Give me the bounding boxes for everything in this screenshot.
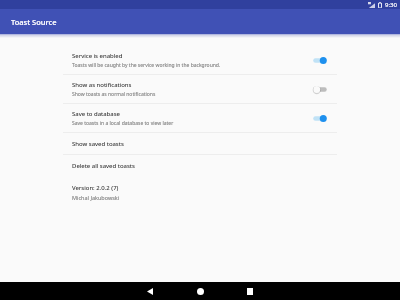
button[interactable]: Switch on <box>310 111 330 125</box>
staticText: Save toasts in a local database to view … <box>72 120 174 127</box>
button[interactable]: Show as notifications <box>63 75 337 103</box>
staticText: Service is enabled <box>72 52 123 60</box>
button[interactable]: Show saved toasts <box>63 133 337 154</box>
staticText: Show saved toasts <box>72 140 124 148</box>
staticText: Delete all saved toasts <box>72 162 135 170</box>
staticText: Version: 2.0.2 (7) <box>72 184 119 192</box>
button[interactable]: Version: 2.0.2 (7) <box>63 176 337 207</box>
staticText: Service is enabled <box>72 52 123 60</box>
staticText: Save toasts in a local database to view … <box>72 120 174 127</box>
staticText: Toast Source <box>11 17 57 27</box>
button[interactable]: Switch off <box>310 82 330 96</box>
staticText: Save to database <box>72 110 120 118</box>
staticText: Toasts will be caught by the service wor… <box>72 62 221 69</box>
staticText: Michal Jakubowski <box>72 194 120 201</box>
staticText: 9:30 <box>385 1 397 9</box>
button[interactable]: Switch on <box>310 53 330 67</box>
button[interactable]: Home <box>187 282 213 300</box>
staticText: Version: 2.0.2 (7) <box>72 184 119 192</box>
staticText: Michal Jakubowski <box>72 194 120 201</box>
staticText: Show toasts as normal notifications <box>72 91 156 98</box>
staticText: Show as notifications <box>72 81 132 89</box>
staticText: Show as notifications <box>72 81 132 89</box>
button[interactable]: Service is enabled <box>63 46 337 74</box>
button[interactable]: Delete all saved toasts <box>63 155 337 176</box>
button[interactable]: Recent apps <box>237 282 263 300</box>
staticText: Show saved toasts <box>72 140 124 148</box>
staticText: Show toasts as normal notifications <box>72 91 156 98</box>
button[interactable]: Back <box>137 282 163 300</box>
button[interactable]: Save to database <box>63 104 337 132</box>
staticText: Toasts will be caught by the service wor… <box>72 62 221 69</box>
staticText: Save to database <box>72 110 120 118</box>
staticText: Delete all saved toasts <box>72 162 135 170</box>
